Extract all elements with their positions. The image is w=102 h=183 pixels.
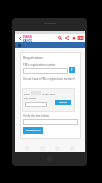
staticText: ? — [71, 68, 73, 72]
staticText: PBCx registration number — [23, 63, 56, 67]
button[interactable]: Menu — [17, 42, 22, 48]
staticText: PARA — [23, 34, 32, 39]
button[interactable] — [23, 119, 78, 125]
button[interactable]: VALIDATE PIN — [23, 127, 43, 134]
button[interactable] — [23, 68, 68, 74]
button[interactable]: Share — [63, 34, 70, 42]
staticText: Type — [24, 92, 30, 95]
button[interactable]: Notifications — [70, 34, 77, 42]
staticText: box below — [24, 96, 36, 99]
button[interactable]: Help — [69, 67, 75, 73]
staticText: Registration — [23, 55, 44, 60]
staticText: Do not have a PBCx registration number? — [23, 77, 76, 81]
button[interactable]: News — [77, 34, 84, 42]
button[interactable]: Home — [23, 34, 33, 42]
button[interactable]: Back — [18, 34, 22, 42]
staticText: in the input — [42, 92, 56, 95]
button[interactable]: Refresh — [55, 100, 71, 105]
button[interactable] — [25, 102, 47, 107]
staticText: Refresh — [59, 101, 68, 104]
staticText: VALIDATE PIN — [26, 129, 41, 132]
staticText: Verify the text below — [23, 114, 49, 118]
staticText: BANCO — [23, 39, 33, 42]
button[interactable]: Search — [56, 34, 63, 42]
